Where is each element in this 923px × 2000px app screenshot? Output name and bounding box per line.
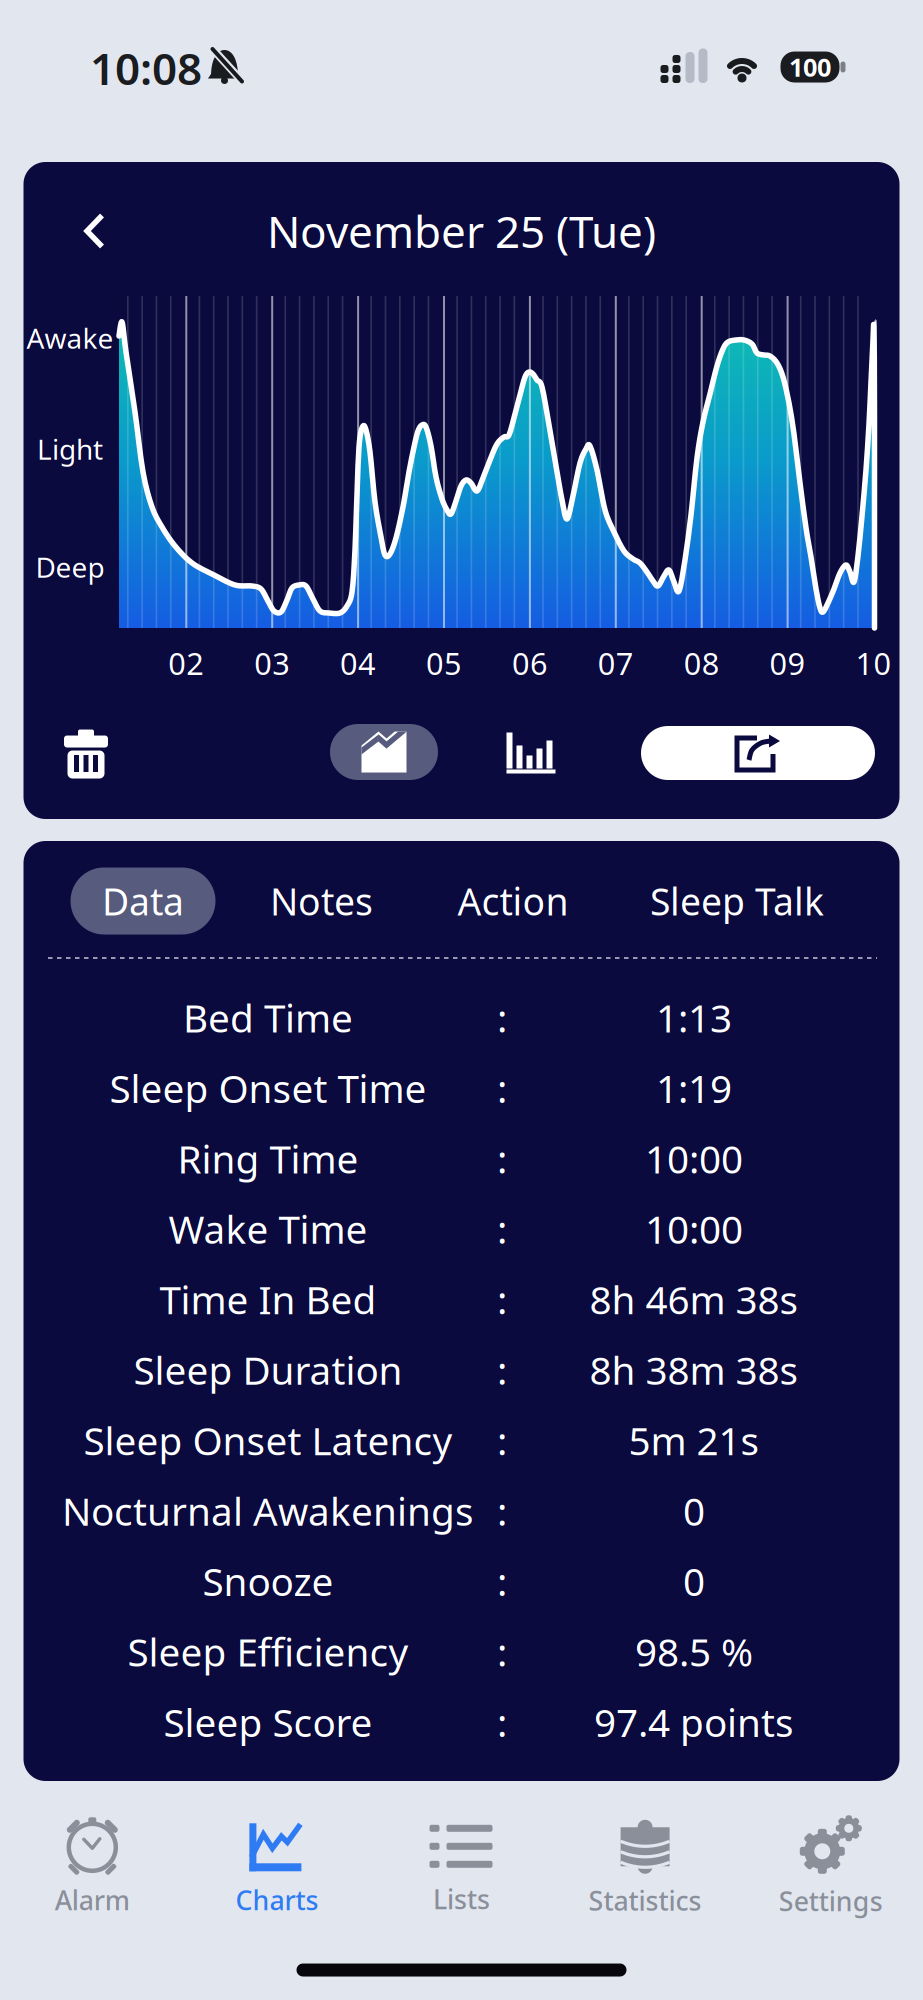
staticText: 05: [426, 643, 462, 683]
staticText: Sleep Efficiency: [127, 1626, 408, 1677]
staticText: Nocturnal Awakenings: [62, 1485, 474, 1536]
staticText: :: [497, 1133, 507, 1184]
staticText: 10:00: [645, 1203, 743, 1254]
button[interactable]: Share: [641, 726, 875, 780]
button[interactable]: Alarm: [55, 1818, 130, 1918]
staticText: 10: [855, 643, 891, 683]
staticText: 08: [684, 643, 720, 683]
staticText: 8h 38m 38s: [589, 1344, 798, 1395]
staticText: Settings: [779, 1883, 883, 1919]
button[interactable]: Line chart: [330, 724, 438, 780]
staticText: Action: [457, 876, 568, 926]
staticText: 5m 21s: [628, 1414, 759, 1466]
staticText: Sleep Score: [163, 1696, 372, 1748]
button[interactable]: Delete: [58, 721, 114, 784]
staticText: Awake: [26, 319, 113, 357]
staticText: :: [497, 1626, 507, 1677]
staticText: Sleep Onset Latency: [83, 1414, 452, 1466]
staticText: Data: [102, 876, 184, 926]
staticText: :: [497, 1485, 507, 1536]
staticText: :: [497, 1203, 507, 1254]
staticText: Charts: [235, 1882, 318, 1918]
staticText: 03: [254, 643, 290, 683]
staticText: Sleep Duration: [133, 1344, 402, 1395]
button[interactable]: Notes: [260, 866, 383, 936]
button[interactable]: Sleep Talk: [640, 866, 834, 936]
staticText: :: [497, 1274, 507, 1325]
staticText: Lists: [433, 1881, 490, 1917]
staticText: 06: [512, 643, 548, 683]
staticText: 02: [168, 643, 204, 683]
staticText: :: [497, 992, 507, 1043]
staticText: :: [497, 1555, 507, 1607]
staticText: :: [497, 1696, 507, 1748]
staticText: Ring Time: [177, 1133, 358, 1184]
staticText: Time In Bed: [159, 1274, 376, 1325]
staticText: :: [497, 1344, 507, 1395]
button[interactable]: Lists: [429, 1823, 493, 1917]
staticText: 04: [340, 643, 376, 683]
staticText: 09: [770, 643, 806, 683]
staticText: 1:13: [656, 992, 732, 1043]
staticText: Snooze: [202, 1555, 333, 1607]
button[interactable]: Statistics: [589, 1820, 702, 1918]
staticText: :: [497, 1062, 507, 1114]
staticText: 100: [789, 50, 831, 84]
button[interactable]: Data: [70, 867, 215, 934]
staticText: Bed Time: [183, 992, 353, 1043]
button[interactable]: Settings: [779, 1819, 883, 1919]
staticText: 8h 46m 38s: [589, 1274, 798, 1325]
staticText: 0: [683, 1555, 705, 1607]
staticText: Statistics: [589, 1883, 702, 1918]
staticText: 10:00: [645, 1133, 743, 1184]
staticText: Sleep Onset Time: [109, 1062, 426, 1114]
staticText: 1:19: [656, 1062, 732, 1114]
staticText: Sleep Talk: [650, 876, 824, 926]
button[interactable]: Back: [75, 203, 114, 258]
staticText: 97.4 points: [594, 1696, 794, 1748]
staticText: 0: [683, 1485, 705, 1536]
button[interactable]: Bar chart: [500, 726, 561, 779]
button[interactable]: Action: [447, 866, 578, 936]
staticText: Light: [37, 430, 103, 468]
staticText: November 25 (Tue): [267, 202, 656, 260]
staticText: :: [497, 1414, 507, 1466]
button[interactable]: Charts: [235, 1822, 318, 1918]
staticText: Wake Time: [168, 1203, 367, 1254]
staticText: Notes: [270, 876, 373, 926]
staticText: 10:08: [90, 39, 202, 97]
staticText: Deep: [35, 548, 104, 586]
staticText: 98.5 %: [635, 1626, 753, 1677]
staticText: 07: [598, 643, 634, 683]
staticText: Alarm: [55, 1882, 130, 1918]
